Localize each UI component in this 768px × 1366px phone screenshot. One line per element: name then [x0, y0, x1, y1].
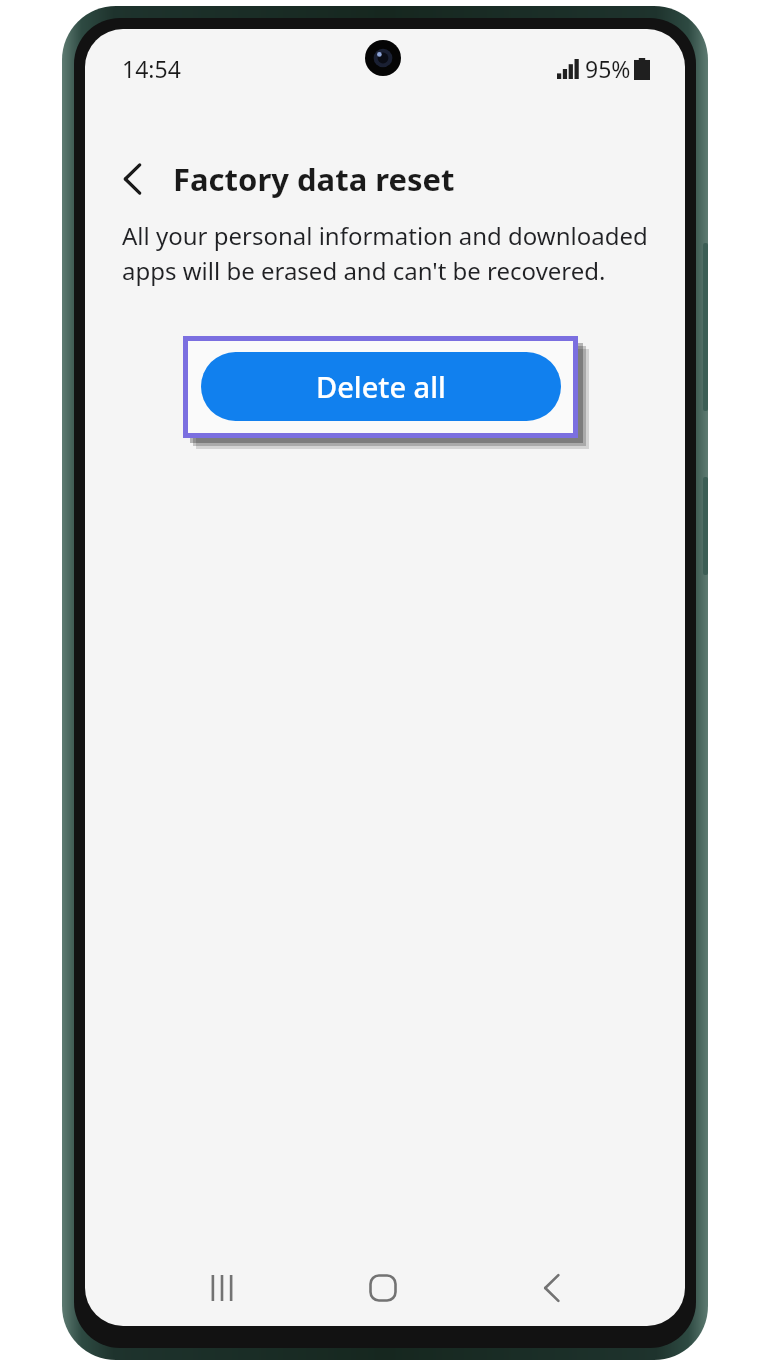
- button[interactable]: Back: [85, 141, 685, 217]
- button[interactable]: Back: [111, 157, 155, 201]
- button[interactable]: Back: [522, 1258, 582, 1318]
- staticText: 14:54: [122, 53, 181, 84]
- staticText: Delete all: [316, 367, 446, 406]
- staticText: 95%: [585, 53, 631, 84]
- button[interactable]: Home: [353, 1258, 413, 1318]
- button[interactable]: Delete all: [201, 352, 561, 421]
- staticText: All your personal information and downlo…: [122, 219, 662, 287]
- staticText: Factory data reset: [173, 158, 455, 200]
- button[interactable]: Recent apps: [192, 1258, 252, 1318]
